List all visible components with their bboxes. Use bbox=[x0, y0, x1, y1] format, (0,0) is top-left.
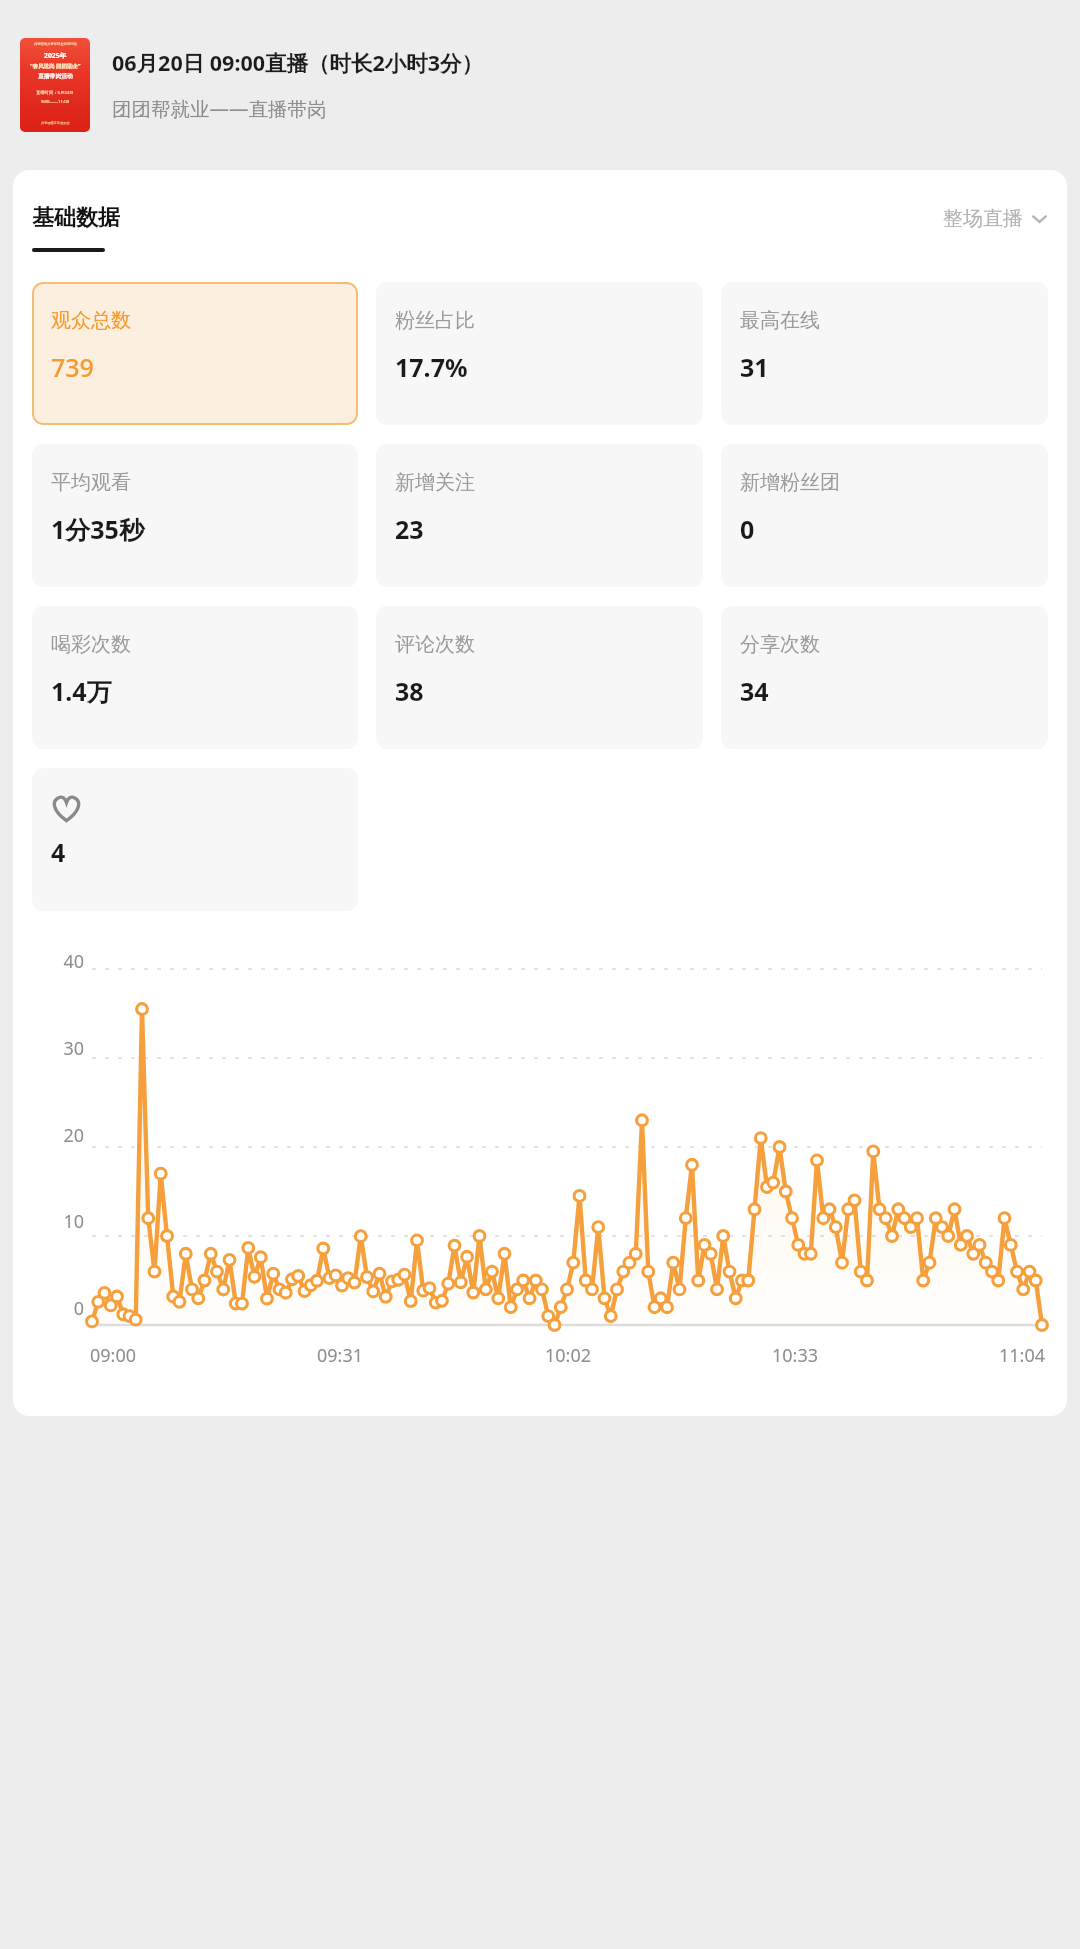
staticText: 观众总数 bbox=[51, 308, 131, 333]
button[interactable]: 分享次数 bbox=[721, 606, 1048, 749]
staticText: 10:33 bbox=[772, 1343, 819, 1368]
button[interactable]: 新增粉丝团 bbox=[721, 444, 1048, 587]
staticText: 共青团通辽市委员会 bbox=[41, 121, 70, 125]
button[interactable]: 共青团助力青年就业促进行动 bbox=[20, 38, 1060, 132]
staticText: 10 bbox=[32, 1209, 84, 1234]
staticText: 20 bbox=[32, 1123, 84, 1148]
staticText: 23 bbox=[395, 512, 424, 546]
staticText: 喝彩次数 bbox=[51, 632, 131, 657]
staticText: “春风送岗 团团助企” bbox=[30, 62, 81, 70]
staticText: 0 bbox=[740, 512, 755, 546]
staticText: 17.7% bbox=[395, 350, 468, 384]
staticText: 整场直播 bbox=[943, 206, 1023, 231]
staticText: 分享次数 bbox=[740, 632, 820, 657]
button[interactable]: 粉丝占比 bbox=[376, 282, 703, 425]
staticText: 新增关注 bbox=[395, 470, 475, 495]
staticText: 09:31 bbox=[317, 1343, 364, 1368]
button[interactable]: 喝彩次数 bbox=[32, 606, 358, 749]
button[interactable]: 4 bbox=[32, 768, 358, 911]
staticText: 团团帮就业——直播带岗 bbox=[112, 95, 327, 122]
button[interactable]: 评论次数 bbox=[376, 606, 703, 749]
staticText: 直播带岗活动 bbox=[38, 72, 73, 79]
staticText: 739 bbox=[51, 350, 94, 384]
staticText: 4 bbox=[51, 835, 66, 869]
staticText: 06月20日 09:00直播（时长2小时3分） bbox=[112, 48, 484, 77]
button[interactable]: 最高在线 bbox=[721, 282, 1048, 425]
staticText: 粉丝占比 bbox=[395, 308, 475, 333]
staticText: 直播时间：5月24日 bbox=[36, 89, 74, 95]
staticText: 09:00 bbox=[90, 1343, 137, 1368]
staticText: 0 bbox=[32, 1296, 84, 1321]
staticText: 2025年 bbox=[44, 51, 67, 60]
button[interactable]: 整场直播 bbox=[943, 206, 1048, 231]
staticText: 平均观看 bbox=[51, 470, 131, 495]
button[interactable]: 平均观看 bbox=[32, 444, 358, 587]
staticText: 新增粉丝团 bbox=[740, 470, 840, 495]
staticText: 评论次数 bbox=[395, 632, 475, 657]
staticText: 1.4万 bbox=[51, 674, 112, 708]
staticText: 30 bbox=[32, 1036, 84, 1061]
staticText: 34 bbox=[740, 674, 769, 708]
button[interactable]: 观众总数 bbox=[32, 282, 358, 425]
staticText: 40 bbox=[32, 949, 84, 974]
staticText: 38 bbox=[395, 674, 424, 708]
staticText: 基础数据 bbox=[32, 204, 120, 232]
button[interactable]: 新增关注 bbox=[376, 444, 703, 587]
staticText: 最高在线 bbox=[740, 308, 820, 333]
staticText: 10:02 bbox=[545, 1343, 592, 1368]
button[interactable]: 基础数据 bbox=[32, 204, 120, 252]
staticText: 9:00——11:00 bbox=[41, 98, 70, 104]
staticText: 11:04 bbox=[999, 1343, 1046, 1368]
staticText: 共青团助力青年就业促进行动 bbox=[34, 42, 77, 46]
staticText: 31 bbox=[740, 350, 769, 384]
staticText: 1分35秒 bbox=[51, 512, 144, 546]
